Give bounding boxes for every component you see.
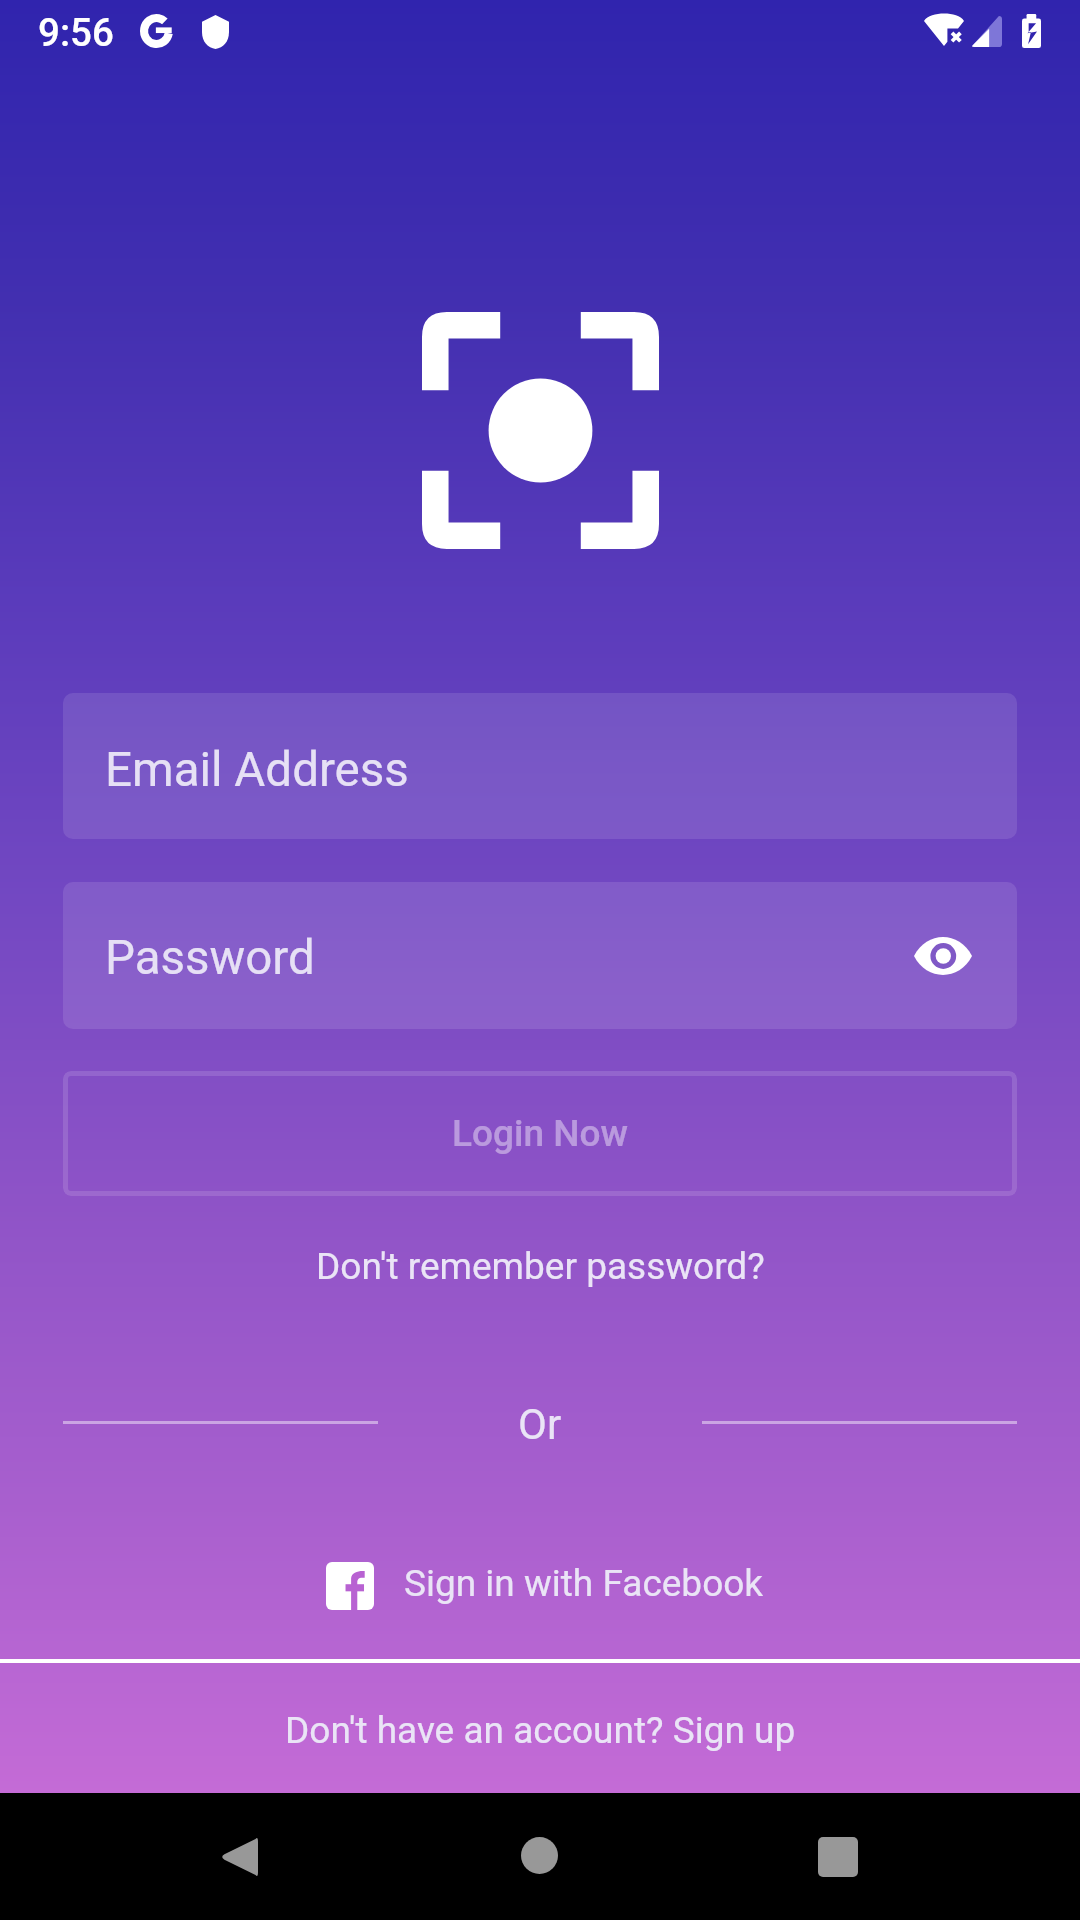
button[interactable]: Home — [521, 1837, 558, 1874]
staticText: 9:56 — [38, 10, 114, 55]
staticText: Email Address — [105, 742, 409, 798]
staticText: Password — [105, 930, 315, 986]
button[interactable]: Back — [220, 1836, 258, 1878]
button[interactable]: Don't remember password? — [276, 1231, 805, 1302]
button[interactable]: Email Address — [63, 693, 1017, 839]
button[interactable]: Recents — [818, 1837, 858, 1877]
staticText: Don't have an account? Sign up — [285, 1709, 796, 1752]
staticText: Don't remember password? — [316, 1245, 765, 1288]
button[interactable]: Password — [63, 882, 1017, 1029]
staticText: Sign in with Facebook — [404, 1562, 764, 1605]
button[interactable]: Sign in with Facebook — [326, 1552, 764, 1620]
staticText: Or — [518, 1400, 562, 1449]
staticText: Login Now — [452, 1112, 628, 1155]
button[interactable]: Don't have an account? Sign up — [0, 1665, 1080, 1795]
button[interactable]: Login Now — [63, 1071, 1017, 1196]
button[interactable]: Show password — [905, 918, 981, 994]
